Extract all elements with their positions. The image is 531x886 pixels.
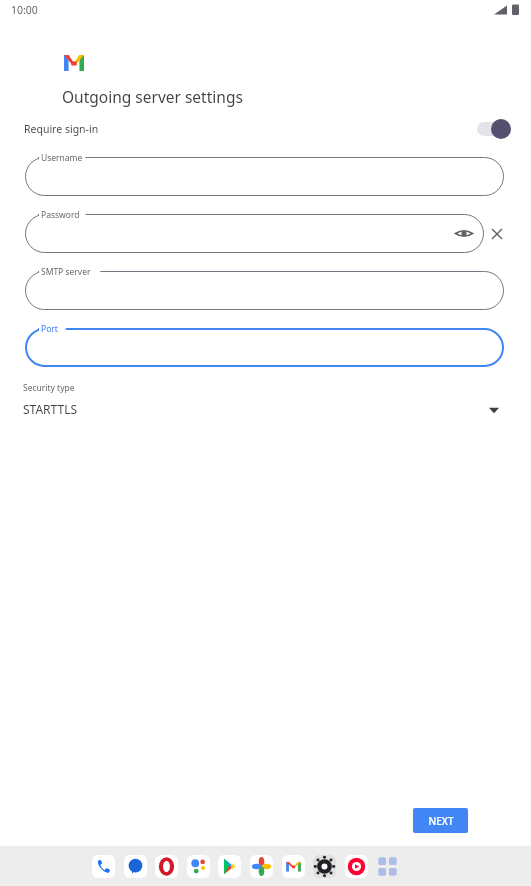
button[interactable]: All apps [376, 855, 399, 878]
button[interactable]: SMTP server [25, 271, 504, 310]
button[interactable]: Password [25, 214, 484, 253]
staticText: Username [41, 152, 83, 164]
staticText: Outgoing server settings [62, 86, 243, 107]
staticText: 10:00 [11, 3, 38, 17]
button[interactable]: Play Store [218, 855, 241, 878]
button[interactable]: Clear password [487, 224, 507, 244]
button[interactable]: Settings [313, 855, 336, 878]
staticText: SMTP server [41, 266, 91, 278]
button[interactable]: Opera [155, 855, 178, 878]
other: Open security type dropdown [486, 402, 502, 418]
button[interactable]: Google Assistant [187, 855, 210, 878]
staticText: Security type [23, 382, 75, 394]
button[interactable]: Require sign-in [0, 112, 531, 146]
staticText: STARTTLS [23, 401, 78, 417]
button[interactable]: Security type [0, 380, 531, 424]
button[interactable]: Require sign-in toggle [477, 119, 511, 139]
staticText: Port [41, 323, 58, 335]
button[interactable]: Photos [250, 855, 273, 878]
staticText: Password [41, 209, 80, 221]
button[interactable]: Username [25, 157, 504, 196]
button[interactable]: Port [25, 328, 504, 367]
button[interactable]: Phone [92, 855, 115, 878]
button[interactable]: Gmail [282, 855, 305, 878]
staticText: NEXT [428, 814, 454, 828]
button[interactable]: YouTube Music [345, 855, 368, 878]
button[interactable]: Messages [124, 855, 147, 878]
button[interactable]: NEXT [413, 808, 468, 833]
staticText: Require sign-in [24, 122, 99, 136]
